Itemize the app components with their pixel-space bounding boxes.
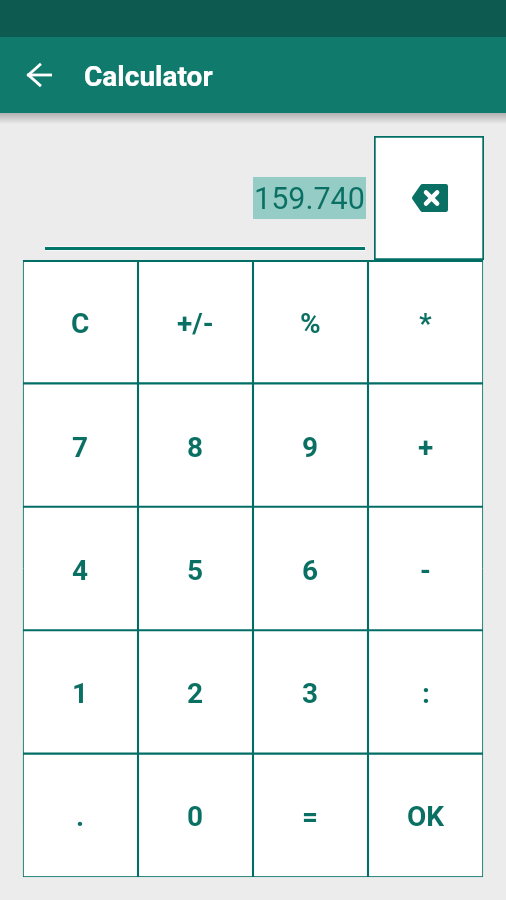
button[interactable]: 1 (23, 631, 138, 754)
staticText: = (302, 800, 319, 833)
staticText: % (300, 307, 321, 340)
button[interactable]: 7 (23, 384, 138, 508)
staticText: 4 (72, 554, 89, 587)
button[interactable]: * (368, 260, 483, 384)
button[interactable]: % (253, 260, 368, 384)
staticText: C (71, 307, 90, 340)
staticText: - (420, 554, 431, 587)
staticText: 9 (302, 431, 319, 464)
button[interactable]: = (253, 754, 368, 877)
button[interactable]: 3 (253, 631, 368, 754)
staticText: . (76, 800, 85, 833)
staticText: 7 (72, 431, 89, 464)
staticText: 0 (187, 800, 204, 833)
button[interactable]: 0 (138, 754, 253, 877)
staticText: 159.740 (254, 181, 365, 217)
staticText: : (422, 677, 430, 710)
staticText: 5 (187, 554, 204, 587)
button[interactable]: +/- (138, 260, 253, 384)
button[interactable]: 8 (138, 384, 253, 508)
button[interactable]: - (368, 508, 483, 631)
staticText: + (418, 431, 434, 464)
staticText: 3 (302, 677, 319, 710)
staticText: 8 (187, 431, 204, 464)
staticText: * (419, 307, 432, 340)
staticText: +/- (177, 307, 214, 340)
staticText: OK (407, 800, 445, 833)
button[interactable]: Backspace (374, 136, 484, 260)
staticText: 2 (187, 677, 204, 710)
button[interactable]: Navigate up (15, 51, 63, 99)
button[interactable]: OK (368, 754, 483, 877)
staticText: 6 (302, 554, 319, 587)
button[interactable]: 5 (138, 508, 253, 631)
staticText: Calculator (84, 60, 213, 93)
button[interactable]: 6 (253, 508, 368, 631)
button[interactable]: C (23, 260, 138, 384)
staticText: 1 (72, 677, 89, 710)
button[interactable]: 4 (23, 508, 138, 631)
button[interactable]: + (368, 384, 483, 508)
button[interactable]: . (23, 754, 138, 877)
button[interactable]: : (368, 631, 483, 754)
button[interactable]: 2 (138, 631, 253, 754)
button[interactable]: 9 (253, 384, 368, 508)
